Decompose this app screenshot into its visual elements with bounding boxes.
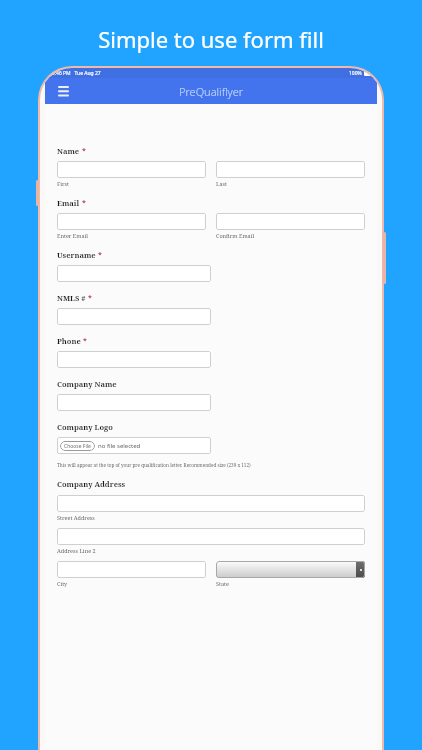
button[interactable] xyxy=(57,495,365,512)
button[interactable] xyxy=(57,351,211,368)
staticText: * xyxy=(82,198,86,208)
button[interactable]: Choose File xyxy=(60,437,208,454)
staticText: * xyxy=(88,293,92,303)
button[interactable] xyxy=(57,213,206,230)
other: Open state list xyxy=(356,561,365,578)
staticText: Street Address xyxy=(57,514,95,521)
staticText: Last xyxy=(216,180,227,187)
staticText: * xyxy=(83,336,87,346)
staticText: Enter Email xyxy=(57,232,89,239)
staticText: * xyxy=(82,146,86,156)
staticText: Company Logo xyxy=(57,422,113,432)
staticText: NMLS # xyxy=(57,293,86,303)
staticText: Name xyxy=(57,146,80,156)
button[interactable]: Menu xyxy=(55,83,71,99)
button[interactable] xyxy=(216,213,365,230)
staticText: * xyxy=(98,250,102,260)
staticText: Company Address xyxy=(57,479,126,489)
staticText: First xyxy=(57,180,70,187)
staticText: State xyxy=(216,580,229,587)
button[interactable] xyxy=(57,265,211,282)
staticText: Phone xyxy=(57,336,81,346)
button[interactable] xyxy=(57,528,365,545)
button[interactable] xyxy=(57,308,211,325)
button[interactable] xyxy=(57,161,206,178)
staticText: City xyxy=(57,580,68,587)
staticText: Company Name xyxy=(57,379,117,389)
staticText: Choose File xyxy=(64,443,91,450)
staticText: Confirm Email xyxy=(216,232,255,239)
staticText: 10:46 PM Tue Aug 27 xyxy=(49,70,101,77)
button[interactable]: Open state list xyxy=(216,561,365,578)
staticText: Simple to use form fill xyxy=(98,24,324,54)
staticText: Address Line 2 xyxy=(57,547,96,554)
staticText: This will appear at the top of your pre … xyxy=(57,462,251,468)
button[interactable] xyxy=(57,394,211,411)
staticText: Email xyxy=(57,198,80,208)
staticText: no file selected xyxy=(98,442,141,450)
staticText: PreQualiflyer xyxy=(179,84,244,99)
staticText: Username xyxy=(57,250,96,260)
button[interactable] xyxy=(216,161,365,178)
staticText: 100% xyxy=(349,70,362,77)
button[interactable] xyxy=(57,561,206,578)
